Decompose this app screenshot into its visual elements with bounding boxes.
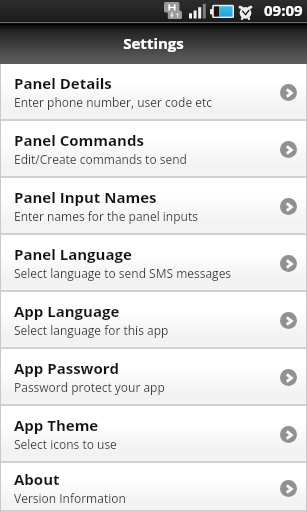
other: Panel Details (280, 84, 297, 101)
staticText: About (14, 469, 60, 489)
button[interactable]: App Theme (0, 406, 307, 461)
button[interactable]: Panel Input Names (0, 178, 307, 233)
staticText: Select language for this app (14, 322, 169, 338)
other: App Password (280, 369, 297, 386)
staticText: App Password (14, 358, 120, 378)
staticText: Password protect your app (14, 379, 165, 395)
staticText: Panel Details (14, 73, 112, 93)
button[interactable]: App Language (0, 292, 307, 347)
staticText: Enter phone number, user code etc (14, 94, 212, 110)
button[interactable]: About (0, 463, 307, 512)
button[interactable]: Panel Commands (0, 121, 307, 176)
staticText: Select icons to use (14, 436, 117, 452)
button[interactable]: Panel Language (0, 235, 307, 290)
staticText: Panel Input Names (14, 187, 157, 207)
other: App Theme (280, 426, 297, 443)
staticText: Select language to send SMS messages (14, 265, 232, 281)
staticText: App Language (14, 301, 120, 321)
staticText: Panel Language (14, 244, 132, 264)
staticText: Edit/Create commands to send (14, 151, 187, 167)
other: Panel Input Names (280, 198, 297, 215)
other: Panel Commands (280, 141, 297, 158)
button[interactable]: Panel Details (0, 64, 307, 119)
other: Panel Language (280, 255, 297, 272)
button[interactable]: App Password (0, 349, 307, 404)
other: App Language (280, 312, 297, 329)
staticText: App Theme (14, 415, 99, 435)
staticText: Version Information (14, 490, 126, 506)
other: About (280, 480, 297, 497)
staticText: Settings (123, 33, 184, 53)
staticText: Panel Commands (14, 130, 144, 150)
staticText: 09:09 (264, 0, 303, 20)
staticText: Enter names for the panel inputs (14, 208, 198, 224)
